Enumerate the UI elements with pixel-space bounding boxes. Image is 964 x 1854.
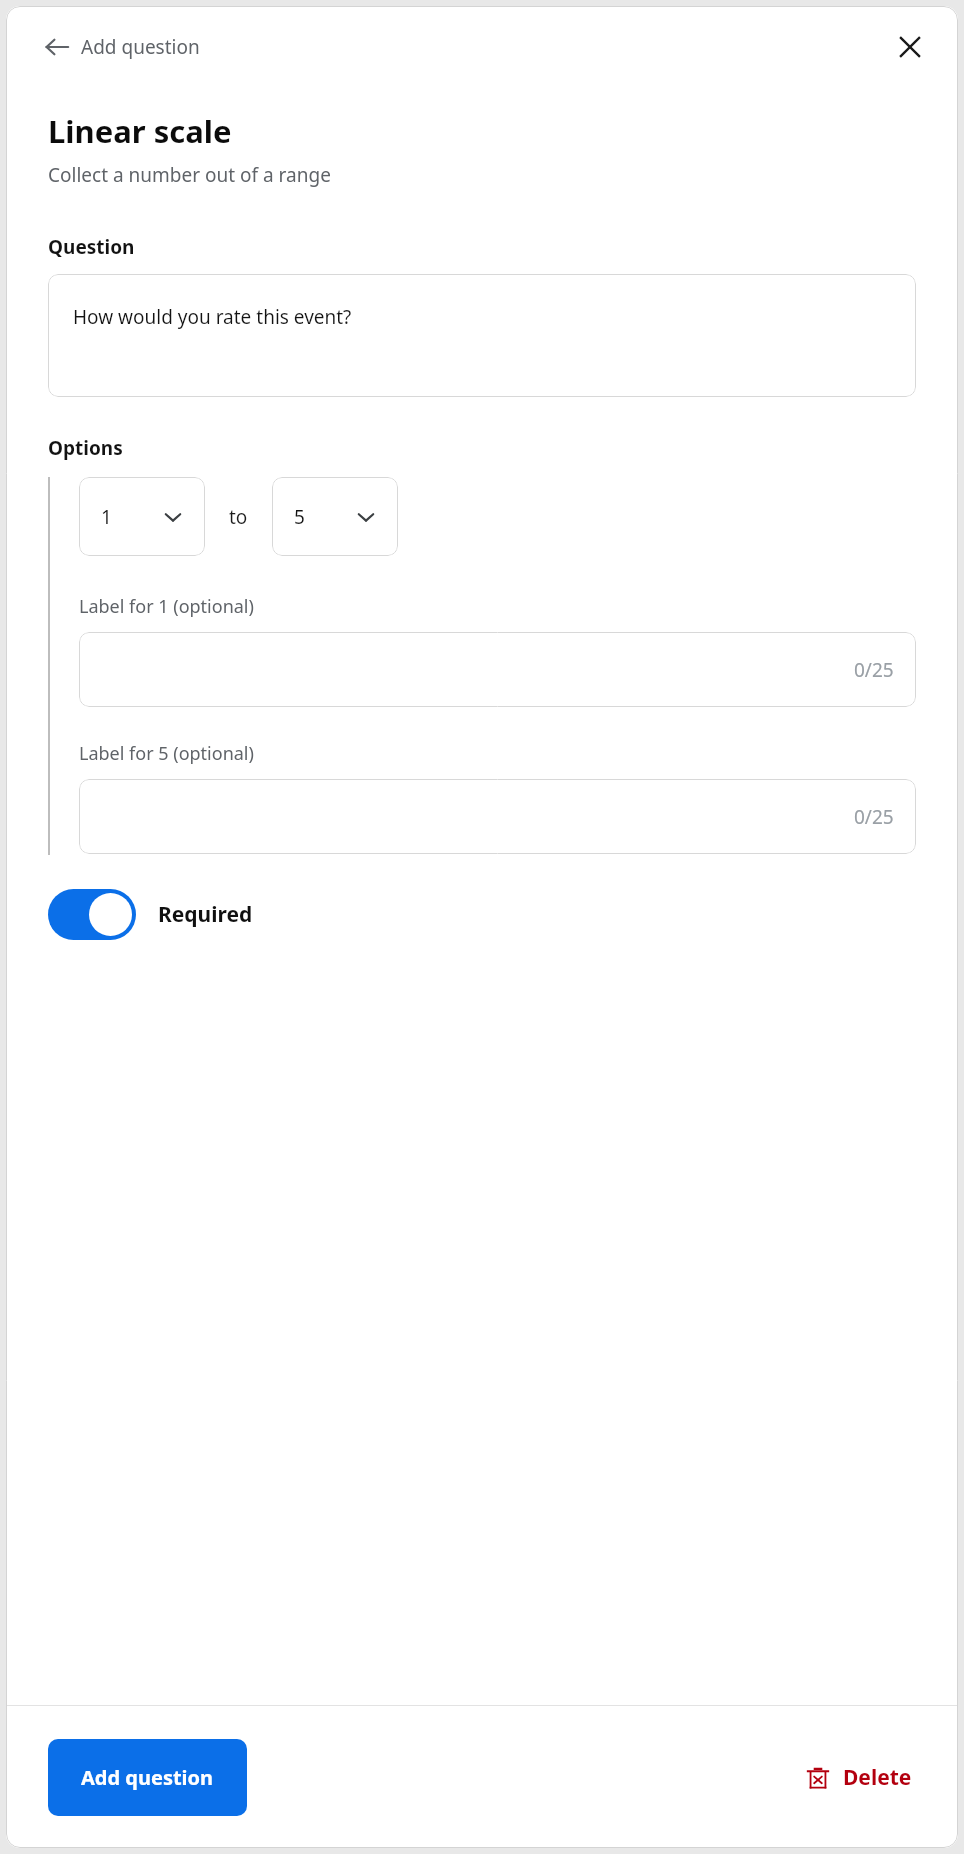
button[interactable]: How would you rate this event? [48, 274, 916, 397]
staticText: Add question [81, 34, 200, 60]
button[interactable]: 5 [272, 477, 398, 556]
staticText: Label for 5 (optional) [79, 741, 254, 766]
staticText: 1 [101, 504, 112, 530]
staticText: Question [48, 234, 135, 260]
staticText: to [229, 504, 248, 530]
staticText: Delete [843, 1763, 912, 1792]
staticText: Options [48, 435, 123, 461]
button[interactable]: Add question [48, 1739, 247, 1816]
button[interactable]: Delete [798, 1755, 920, 1800]
button[interactable]: Back [36, 28, 208, 66]
staticText: Required [158, 900, 253, 929]
staticText: How would you rate this event? [73, 304, 352, 330]
staticText: 0/25 [854, 657, 894, 683]
button[interactable]: 0/25 [79, 632, 916, 707]
staticText: 0/25 [854, 804, 894, 830]
staticText: Label for 1 (optional) [79, 594, 254, 619]
staticText: 5 [294, 504, 305, 530]
button[interactable]: 0/25 [79, 779, 916, 854]
other: Delete [806, 1766, 830, 1790]
staticText: Collect a number out of a range [48, 162, 331, 188]
staticText: Add question [81, 1764, 214, 1791]
button[interactable]: 1 [79, 477, 205, 556]
staticText: Linear scale [48, 110, 232, 152]
button[interactable]: Close [888, 25, 932, 69]
other: Back [44, 34, 70, 60]
button[interactable]: Required [48, 889, 263, 940]
